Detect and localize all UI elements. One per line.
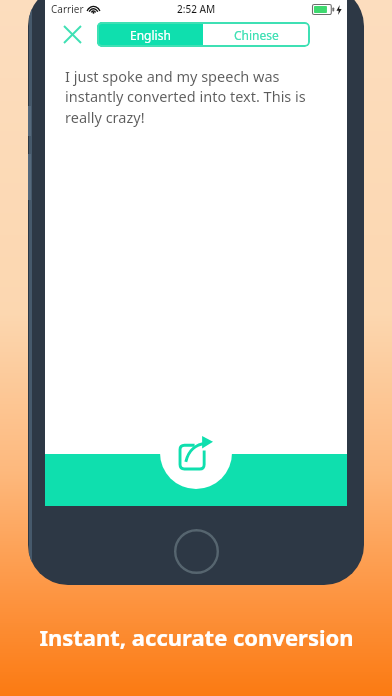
button[interactable]: Close [57, 19, 87, 49]
staticText: Chinese [234, 27, 279, 43]
staticText: English [130, 27, 171, 43]
button[interactable]: Chinese [203, 22, 310, 47]
button[interactable]: English [97, 22, 203, 47]
staticText: Instant, accurate conversion [39, 622, 354, 652]
staticText: 2:52 AM [177, 2, 216, 16]
button[interactable]: Share [160, 417, 232, 489]
staticText: I just spoke and my speech was instantly… [65, 66, 327, 128]
staticText: Carrier [51, 2, 84, 16]
button[interactable]: Home [174, 529, 219, 574]
